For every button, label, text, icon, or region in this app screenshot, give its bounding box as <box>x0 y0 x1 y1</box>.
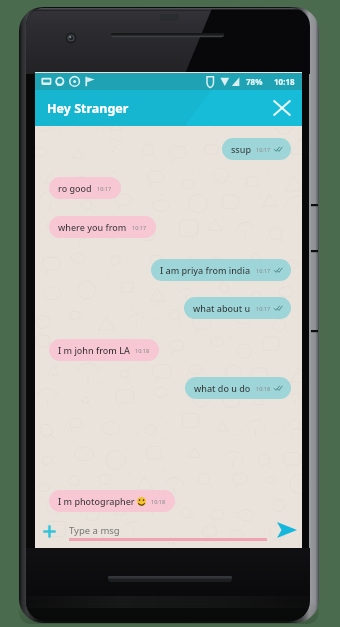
staticText: 10:18 <box>151 498 166 505</box>
staticText: 10:17 <box>256 305 271 312</box>
staticText: ssup <box>231 143 251 155</box>
staticText: Hey Stranger <box>47 100 129 117</box>
staticText: 10:18 <box>135 347 150 354</box>
button[interactable]: ro good <box>49 177 121 199</box>
staticText: where you from <box>58 221 127 233</box>
button[interactable]: Send message <box>275 520 299 540</box>
staticText: 10:17 <box>132 224 147 231</box>
staticText: 10:18 <box>274 76 295 87</box>
staticText: I m john from LA <box>58 344 130 356</box>
staticText: 10:18 <box>256 385 271 392</box>
staticText: I am priya from india <box>160 264 251 276</box>
button[interactable]: what about u <box>184 297 291 319</box>
staticText: what about u <box>193 302 251 314</box>
staticText: 10:17 <box>256 267 271 274</box>
button[interactable]: I m john from LA <box>49 339 159 361</box>
staticText: ro good <box>58 182 92 194</box>
staticText: 10:17 <box>97 185 112 192</box>
button[interactable]: Add attachment <box>39 521 60 542</box>
button[interactable]: Close chat <box>269 95 295 121</box>
button[interactable]: I m photographer <box>49 490 175 512</box>
button[interactable]: what do u do <box>185 377 291 399</box>
staticText: 78% <box>246 76 263 87</box>
button[interactable]: ssup <box>222 138 291 160</box>
staticText: what do u do <box>194 382 251 394</box>
staticText: 10:17 <box>256 146 271 153</box>
staticText: I m photographer <box>58 495 135 507</box>
button[interactable]: where you from <box>49 216 156 238</box>
staticText: Type a msg <box>69 524 120 537</box>
button[interactable]: I am priya from india <box>151 259 291 281</box>
